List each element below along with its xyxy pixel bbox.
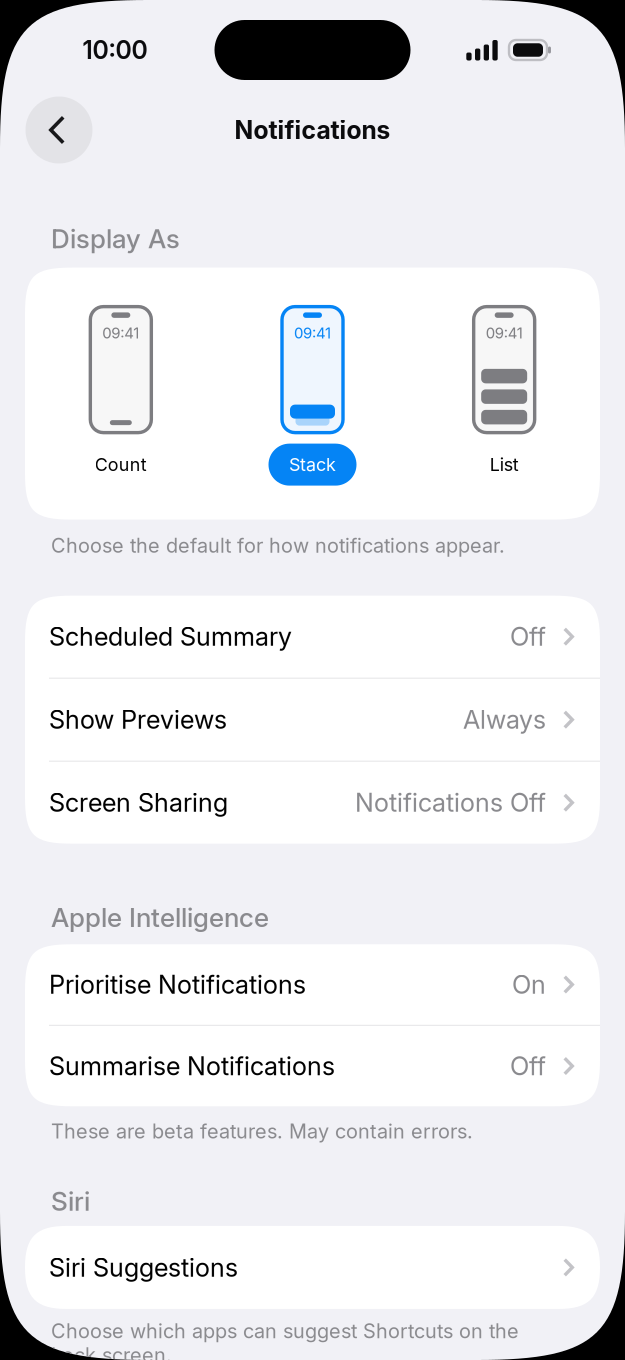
staticText: Count — [95, 454, 147, 475]
staticText: Notifications Off — [355, 787, 546, 818]
button[interactable]: 09:41 — [217, 268, 408, 520]
staticText: Show Previews — [49, 704, 227, 735]
button[interactable]: Screen Sharing — [25, 762, 600, 844]
staticText: 09:41 — [486, 324, 523, 342]
button[interactable]: Siri Suggestions — [25, 1226, 600, 1309]
staticText: Notifications — [234, 115, 390, 145]
staticText: Display As — [51, 223, 180, 255]
staticText: Siri — [51, 1185, 90, 1217]
staticText: Prioritise Notifications — [49, 969, 306, 1000]
staticText: Stack — [289, 454, 336, 475]
staticText: Screen Sharing — [49, 787, 228, 818]
staticText: Apple Intelligence — [51, 902, 269, 933]
staticText: List — [490, 454, 519, 475]
staticText: Off — [510, 1051, 546, 1081]
staticText: 10:00 — [82, 35, 147, 65]
button[interactable]: Summarise Notifications — [25, 1026, 600, 1106]
button[interactable]: Show Previews — [25, 679, 600, 761]
staticText: Choose the default for how notifications… — [51, 534, 505, 558]
staticText: Siri Suggestions — [49, 1252, 238, 1283]
button[interactable]: Back — [25, 96, 92, 163]
staticText: Scheduled Summary — [49, 621, 292, 652]
staticText: Choose which apps can suggest Shortcuts … — [51, 1319, 519, 1360]
staticText: 09:41 — [102, 324, 139, 342]
button[interactable]: 09:41 — [408, 268, 600, 520]
button[interactable]: Prioritise Notifications — [25, 944, 600, 1025]
staticText: Always — [463, 704, 546, 735]
staticText: These are beta features. May contain err… — [51, 1119, 473, 1143]
staticText: On — [512, 969, 546, 1000]
staticText: Off — [510, 621, 546, 652]
staticText: Summarise Notifications — [49, 1051, 335, 1081]
button[interactable]: 09:41 — [25, 268, 217, 520]
button[interactable]: Scheduled Summary — [25, 596, 600, 678]
staticText: 09:41 — [294, 324, 331, 342]
